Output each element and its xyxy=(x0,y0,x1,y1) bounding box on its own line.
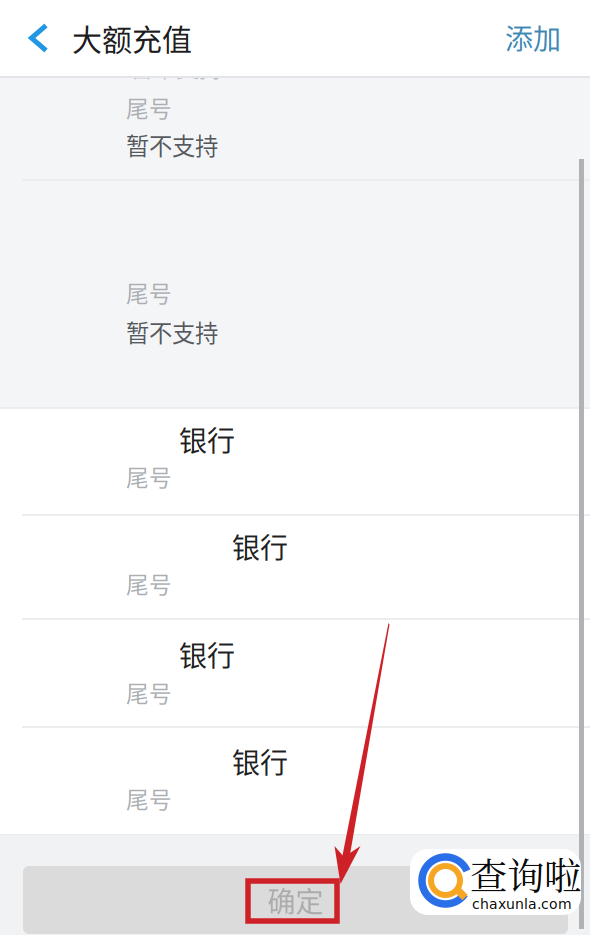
button[interactable]: 银行 尾号 xyxy=(0,408,590,515)
button[interactable]: 银行 尾号 xyxy=(0,620,590,727)
staticText: 尾号 xyxy=(126,676,172,709)
button[interactable]: 添加 xyxy=(497,13,569,61)
staticText: 查询啦 xyxy=(470,847,581,901)
staticText: 尾号 xyxy=(126,460,172,493)
staticText: 尾号 xyxy=(126,91,172,124)
staticText: 确定 xyxy=(267,880,323,920)
staticText: 大额充值 xyxy=(72,16,192,59)
staticText: 银行 xyxy=(179,634,235,674)
button[interactable]: 尾号 暂不支持 xyxy=(0,181,590,407)
staticText: 添加 xyxy=(505,17,561,57)
staticText: chaxunla.com xyxy=(472,896,572,912)
button[interactable]: 确定 xyxy=(23,866,568,934)
staticText: 银行 xyxy=(179,419,235,459)
button[interactable]: 银行 尾号 xyxy=(0,728,590,835)
staticText: 银行 xyxy=(232,741,288,781)
staticText: 尾号 xyxy=(126,782,172,815)
staticText: 尾号 xyxy=(126,276,172,309)
button[interactable]: 银行 尾号 xyxy=(0,516,590,619)
staticText: 尾号 xyxy=(126,567,172,600)
button[interactable]: Back xyxy=(24,19,54,57)
staticText: 暂不支持 xyxy=(126,315,218,349)
staticText: 暂不支持 xyxy=(126,128,218,162)
button[interactable]: 尾号 暂不支持 xyxy=(0,78,590,180)
staticText: 暂不支持 xyxy=(130,50,222,84)
staticText: 银行 xyxy=(232,526,288,566)
